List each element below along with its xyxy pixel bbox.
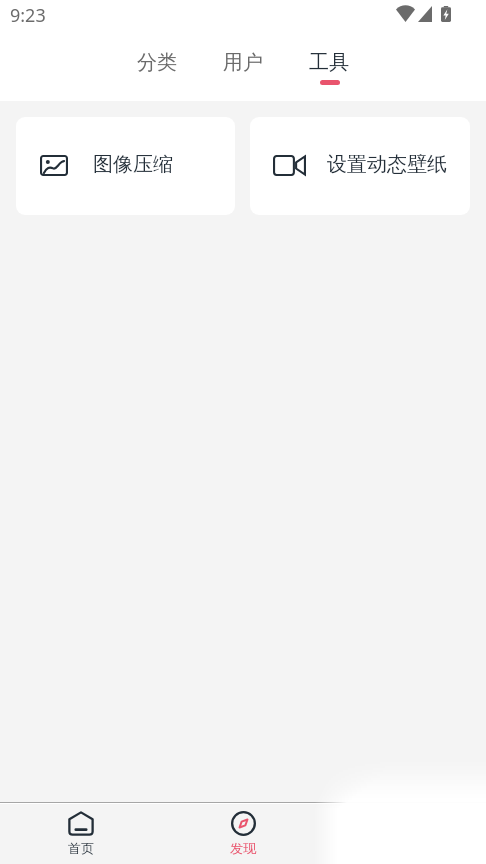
staticText: 设置动态壁纸 bbox=[327, 152, 447, 177]
button[interactable]: 发现 bbox=[162, 802, 324, 864]
staticText: 图像压缩 bbox=[93, 152, 173, 177]
button[interactable]: 设置动态壁纸 bbox=[250, 117, 470, 215]
button[interactable]: 图像压缩 bbox=[16, 117, 235, 215]
staticText: 发现 bbox=[230, 840, 257, 857]
button[interactable]: 用户 bbox=[207, 41, 279, 91]
staticText: 9:23 bbox=[10, 3, 46, 28]
staticText: 首页 bbox=[68, 840, 95, 857]
staticText: 用户 bbox=[223, 50, 263, 75]
staticText: 工具 bbox=[309, 50, 349, 75]
staticText: 分类 bbox=[137, 50, 177, 75]
button[interactable]: 工具 bbox=[293, 41, 365, 91]
button[interactable]: 首页 bbox=[0, 802, 162, 864]
button[interactable]: 分类 bbox=[121, 41, 193, 91]
